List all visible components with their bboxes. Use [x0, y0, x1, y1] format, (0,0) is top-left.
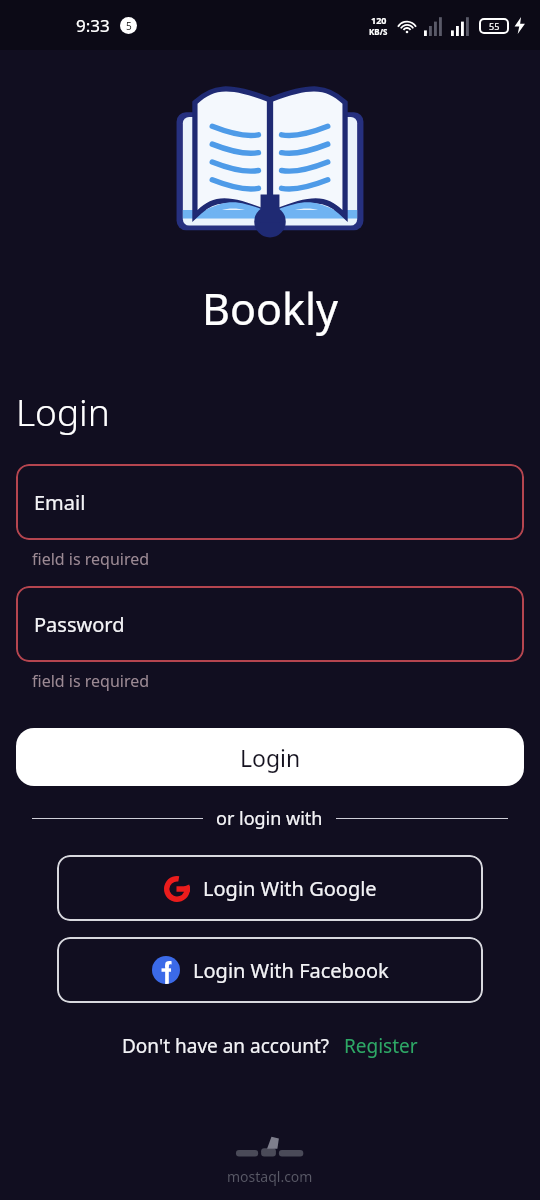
- staticText: Register: [344, 1033, 418, 1059]
- staticText: Login: [240, 742, 301, 773]
- button[interactable]: Register: [344, 1033, 418, 1059]
- staticText: Bookly: [0, 279, 540, 338]
- button[interactable]: Login With Facebook: [57, 937, 483, 1003]
- staticText: Email: [34, 489, 86, 516]
- staticText: Login With Facebook: [193, 957, 389, 984]
- staticText: field is required: [32, 670, 150, 692]
- staticText: mostaql.com: [227, 1167, 313, 1186]
- staticText: Don't have an account?: [122, 1033, 330, 1059]
- staticText: 120: [371, 14, 387, 26]
- staticText: or login with: [216, 806, 323, 831]
- staticText: KB/S: [369, 26, 388, 37]
- staticText: 5: [126, 19, 132, 33]
- staticText: Password: [34, 611, 125, 638]
- staticText: 55: [489, 20, 500, 32]
- button[interactable]: Login: [16, 728, 524, 786]
- staticText: field is required: [32, 548, 150, 570]
- button[interactable]: Password: [16, 586, 524, 662]
- staticText: Login: [16, 386, 110, 436]
- button[interactable]: Login With Google: [57, 855, 483, 921]
- staticText: Login With Google: [203, 875, 377, 902]
- staticText: 9:33: [76, 14, 110, 37]
- button[interactable]: Email: [16, 464, 524, 540]
